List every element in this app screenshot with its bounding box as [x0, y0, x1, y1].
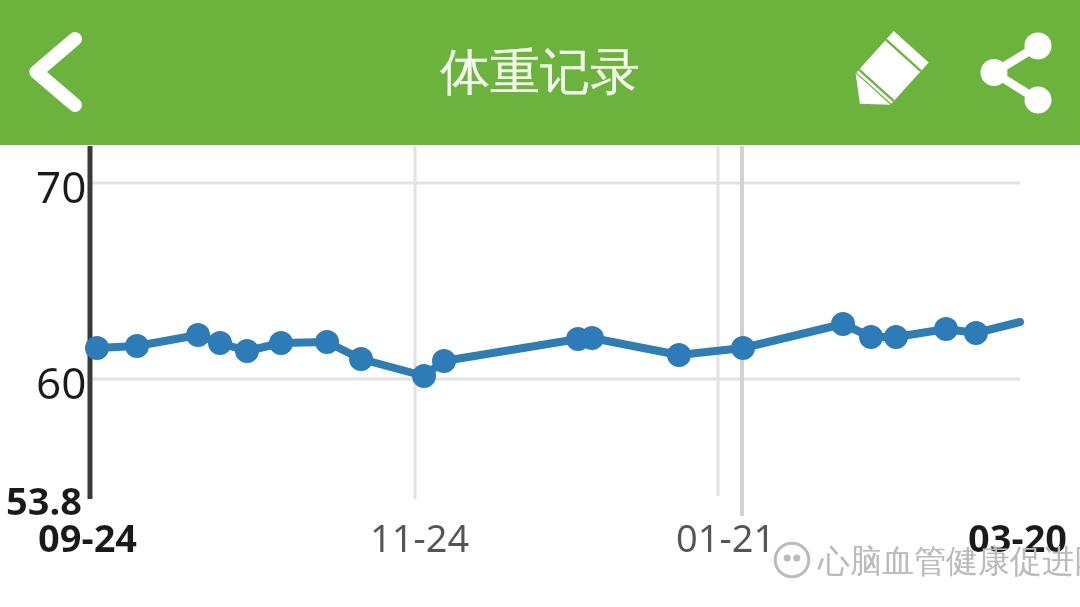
staticText: 09-24	[38, 511, 138, 563]
button[interactable]: Edit	[838, 20, 938, 125]
staticText: 11-24	[370, 511, 470, 563]
staticText: 01-21	[676, 511, 776, 563]
staticText: 体重记录	[440, 41, 640, 104]
button[interactable]: Back	[12, 22, 102, 122]
button[interactable]: 体重记录	[440, 41, 640, 104]
staticText: 70	[36, 156, 87, 216]
staticText: 60	[36, 352, 87, 412]
staticText: 心脑血管健康促进网	[818, 541, 1080, 581]
staticText: 03-20	[968, 511, 1068, 563]
button[interactable]: Share	[965, 25, 1065, 120]
staticText: 53.8	[6, 474, 82, 526]
